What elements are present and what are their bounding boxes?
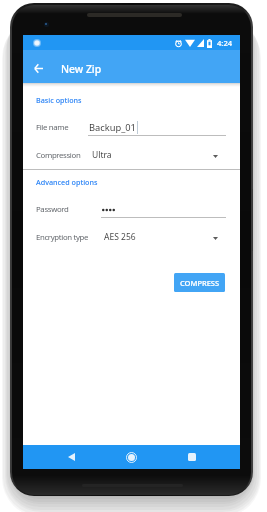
staticText: Encryption type: [36, 232, 89, 243]
staticText: Backup_01: [89, 121, 136, 134]
button[interactable]: Password: [102, 208, 115, 212]
staticText: 4:24: [217, 38, 233, 48]
button[interactable]: Back: [59, 445, 83, 469]
staticText: File name: [36, 122, 69, 133]
button[interactable]: Home: [119, 445, 143, 469]
button[interactable]: Navigate up: [28, 58, 49, 79]
staticText: COMPRESS: [180, 278, 220, 288]
staticText: AES 256: [104, 231, 136, 243]
button[interactable]: COMPRESS: [174, 273, 225, 292]
button[interactable]: Encryption type: [23, 229, 240, 245]
staticText: Advanced options: [36, 177, 98, 187]
button[interactable]: Compression: [23, 147, 240, 163]
button[interactable]: Backup_01: [89, 121, 138, 134]
staticText: Password: [36, 204, 69, 215]
staticText: Ultra: [92, 149, 112, 161]
staticText: New Zip: [61, 62, 102, 76]
staticText: Basic options: [36, 95, 82, 105]
staticText: Compression: [36, 150, 81, 161]
button[interactable]: Back: [59, 445, 253, 469]
button[interactable]: Recent apps: [180, 445, 204, 469]
button[interactable]: New Zip: [61, 54, 107, 83]
